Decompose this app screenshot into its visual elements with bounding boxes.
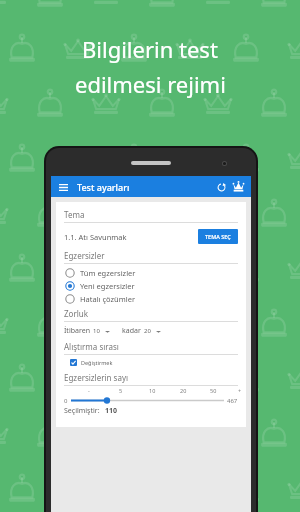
staticText: Egzersizler [64, 250, 105, 261]
staticText: - [88, 387, 90, 394]
staticText: 467 [227, 397, 238, 405]
staticText: Yeni egzersizler [80, 281, 135, 291]
button[interactable]: Yeni egzersizler [64, 279, 238, 292]
button[interactable]: TEMA SEÇ [198, 229, 238, 244]
button[interactable]: İtibaren [64, 326, 110, 336]
staticText: Alıştırma sırası [64, 341, 119, 352]
button[interactable]: kadar [122, 326, 161, 336]
button[interactable]: Tüm egzersizler [64, 266, 238, 279]
staticText: 20 [144, 327, 151, 335]
button[interactable]: Değiştirmek [64, 359, 113, 366]
staticText: 50 [210, 387, 217, 394]
staticText: Bilgilerin test [82, 34, 218, 64]
staticText: 20 [180, 387, 187, 394]
staticText: 110 [105, 406, 118, 416]
staticText: Zorluk [64, 308, 88, 319]
button[interactable]: Premium [231, 179, 246, 194]
staticText: TEMA SEÇ [205, 233, 231, 240]
staticText: Hatalı çözümler [80, 294, 135, 304]
staticText: 0 [64, 397, 68, 405]
staticText: kadar [122, 326, 141, 336]
staticText: Test ayarları [77, 181, 130, 193]
button[interactable]: Exercise count slider [71, 395, 224, 406]
staticText: İtibaren [64, 326, 90, 336]
staticText: Seçilmiştir: [64, 406, 100, 416]
staticText: Egzersizlerin sayı [64, 372, 129, 383]
staticText: + [238, 387, 242, 394]
button[interactable]: Menu [56, 180, 70, 194]
staticText: Değiştirmek [81, 359, 113, 366]
staticText: edilmesi rejimi [75, 69, 226, 99]
staticText: 5 [119, 387, 123, 394]
staticText: 1.1. Atı Savunmak [64, 232, 127, 242]
staticText: 10 [149, 387, 156, 394]
staticText: Tema [64, 209, 85, 220]
staticText: Tüm egzersizler [80, 268, 136, 278]
button[interactable]: Hatalı çözümler [64, 292, 238, 305]
button[interactable]: Refresh [214, 180, 228, 194]
staticText: 10 [93, 327, 100, 335]
